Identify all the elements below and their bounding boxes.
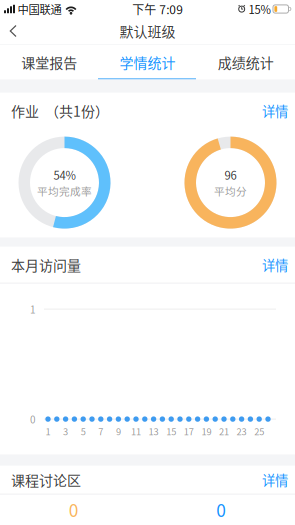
button[interactable]: 详情 bbox=[244, 464, 295, 495]
staticText: 作业 （共1份） bbox=[11, 100, 109, 121]
button[interactable]: Back bbox=[0, 18, 31, 43]
staticText: 19 bbox=[201, 424, 211, 438]
button[interactable]: 学情统计 bbox=[98, 45, 197, 80]
staticText: 5 bbox=[81, 424, 86, 438]
staticText: 0 bbox=[30, 412, 36, 426]
staticText: 13 bbox=[149, 424, 159, 438]
staticText: 平均完成率 bbox=[37, 183, 92, 198]
button[interactable]: 课堂报告 bbox=[0, 45, 98, 80]
staticText: 0 bbox=[216, 497, 226, 522]
button[interactable]: 成绩统计 bbox=[197, 45, 295, 80]
staticText: 17 bbox=[184, 424, 194, 438]
staticText: 21 bbox=[219, 424, 229, 438]
staticText: 详情 bbox=[262, 255, 288, 274]
staticText: 学情统计 bbox=[119, 52, 175, 72]
staticText: 15% bbox=[248, 1, 270, 17]
staticText: 中国联通 bbox=[17, 1, 61, 17]
staticText: 详情 bbox=[262, 470, 288, 489]
staticText: 11 bbox=[131, 424, 141, 438]
staticText: 下午 7:09 bbox=[132, 0, 183, 18]
staticText: 15 bbox=[166, 424, 176, 438]
staticText: 课堂报告 bbox=[21, 52, 77, 72]
button[interactable]: 详情 bbox=[244, 249, 295, 280]
staticText: 1 bbox=[30, 302, 36, 316]
staticText: 7 bbox=[98, 424, 103, 438]
staticText: 详情 bbox=[262, 101, 288, 120]
staticText: 0 bbox=[69, 497, 79, 522]
staticText: 本月访问量 bbox=[11, 254, 81, 275]
staticText: 3 bbox=[63, 424, 68, 438]
staticText: 96 bbox=[224, 167, 236, 183]
staticText: 25 bbox=[254, 424, 264, 438]
staticText: 9 bbox=[116, 424, 121, 438]
staticText: 23 bbox=[237, 424, 247, 438]
staticText: 课程讨论区 bbox=[11, 469, 81, 490]
staticText: 默认班级 bbox=[119, 21, 175, 41]
staticText: 54% bbox=[53, 167, 75, 183]
staticText: 成绩统计 bbox=[218, 52, 274, 72]
staticText: 平均分 bbox=[214, 183, 247, 198]
staticText: 1 bbox=[45, 424, 50, 438]
button[interactable]: 详情 bbox=[244, 95, 295, 126]
